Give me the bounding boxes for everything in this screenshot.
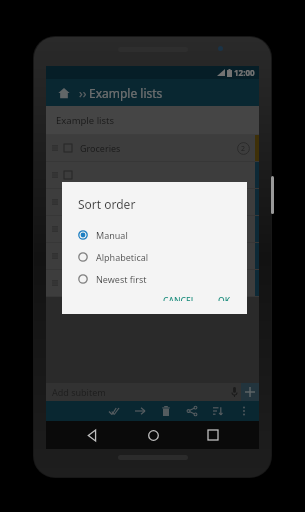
button[interactable] — [46, 243, 259, 269]
button[interactable]: Home — [138, 421, 168, 449]
button[interactable]: More options — [231, 401, 257, 421]
staticText: ›› — [79, 85, 87, 101]
staticText: Sort order — [78, 196, 136, 212]
button[interactable]: Add — [241, 383, 259, 401]
staticText: 12:00 — [234, 67, 255, 78]
staticText: Alphabetical — [96, 251, 149, 263]
button[interactable]: Groceries — [46, 135, 259, 161]
button[interactable]: Move — [127, 401, 153, 421]
staticText: Groceries — [80, 142, 121, 154]
button[interactable] — [46, 216, 259, 242]
staticText: 2 — [241, 144, 246, 154]
button[interactable]: CANCEL — [155, 290, 204, 306]
button[interactable]: Mark all done — [101, 401, 127, 421]
button[interactable] — [46, 189, 259, 215]
button[interactable]: Delete — [153, 401, 179, 421]
button[interactable] — [46, 270, 259, 296]
staticText: Add subitem — [52, 386, 106, 398]
button[interactable]: Manual — [62, 224, 247, 246]
staticText: Example lists — [56, 114, 115, 127]
button[interactable]: Alphabetical — [62, 246, 247, 268]
staticText: Manual — [96, 229, 128, 241]
button[interactable]: Share — [179, 401, 205, 421]
staticText: Example lists — [89, 85, 163, 101]
button[interactable]: Voice input — [227, 383, 241, 401]
button[interactable]: Home — [54, 83, 74, 103]
button[interactable]: OK — [210, 290, 239, 306]
button[interactable] — [46, 162, 259, 188]
button[interactable]: Recent apps — [198, 421, 228, 449]
staticText: Newest first — [96, 273, 147, 285]
staticText: CANCEL — [163, 295, 196, 301]
button[interactable]: Back — [77, 421, 107, 449]
button[interactable]: Newest first — [62, 268, 247, 290]
staticText: OK — [218, 295, 231, 301]
button[interactable]: Sort order — [205, 401, 231, 421]
